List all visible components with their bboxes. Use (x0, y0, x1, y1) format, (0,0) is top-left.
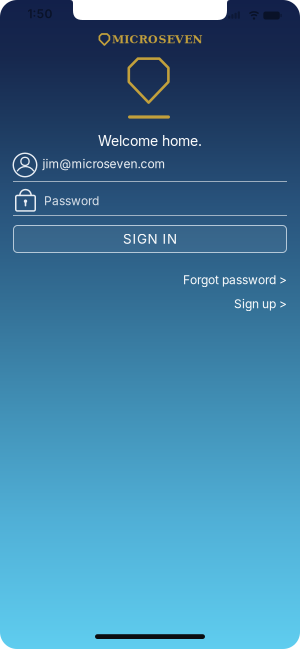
button[interactable]: Forgot password > (183, 273, 287, 287)
staticText: Sign up > (234, 297, 287, 311)
staticText: MICROSEVEN (112, 33, 203, 46)
button[interactable]: Password (13, 183, 287, 216)
staticText: SIGN IN (123, 231, 177, 247)
staticText: 1:50 (27, 7, 52, 21)
staticText: Password (44, 194, 99, 208)
button[interactable]: Sign up > (234, 297, 287, 311)
staticText: Forgot password > (183, 273, 287, 287)
button[interactable]: Email (13, 149, 287, 182)
button[interactable]: SIGN IN (13, 225, 287, 253)
staticText: jim@microseven.com (42, 157, 165, 171)
staticText: Welcome home. (98, 133, 202, 149)
